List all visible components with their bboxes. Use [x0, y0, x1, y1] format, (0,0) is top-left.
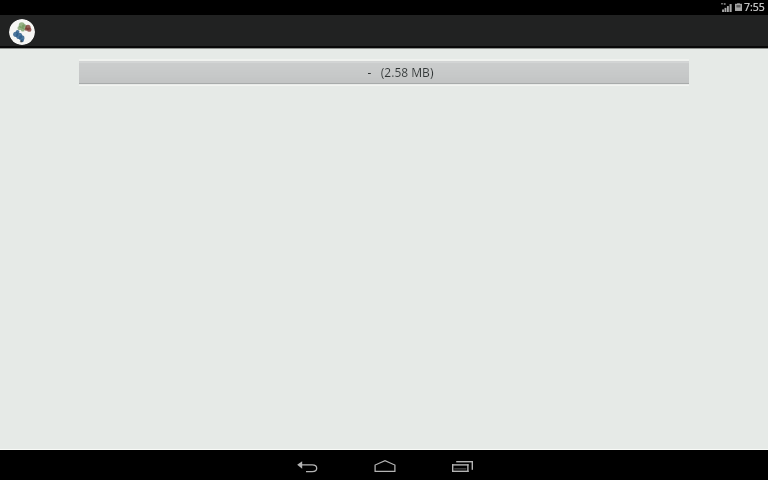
button[interactable]: App icon	[9, 19, 35, 45]
button[interactable]: Recent apps	[436, 451, 488, 480]
button[interactable]: Home	[359, 451, 411, 480]
staticText: - (2.58 MB)	[367, 64, 434, 80]
button[interactable]: Back	[281, 451, 333, 480]
button[interactable]: - (2.58 MB)	[79, 59, 689, 86]
staticText: 7:55	[744, 0, 765, 14]
